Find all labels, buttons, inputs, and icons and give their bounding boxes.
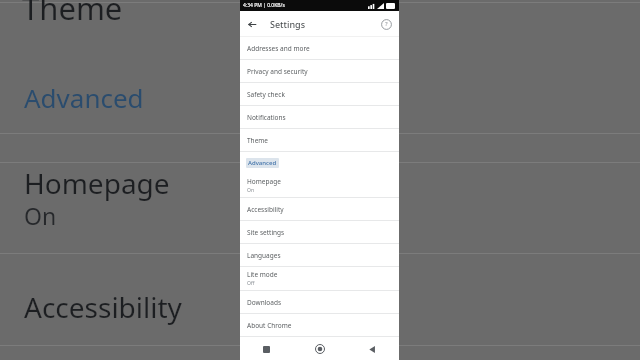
- button[interactable]: Help and feedback: [377, 15, 395, 33]
- staticText: Accessibility: [247, 205, 284, 214]
- button[interactable]: Back: [346, 338, 399, 360]
- button[interactable]: Home: [293, 338, 346, 360]
- staticText: Languages: [247, 251, 281, 260]
- staticText: Settings: [270, 18, 306, 30]
- staticText: About Chrome: [247, 321, 292, 330]
- staticText: Accessibility: [24, 288, 182, 326]
- staticText: Lite mode: [247, 270, 278, 279]
- staticText: Homepage: [24, 164, 170, 202]
- staticText: ?: [385, 20, 388, 28]
- staticText: Addresses and more: [247, 44, 310, 53]
- staticText: Downloads: [247, 298, 282, 307]
- staticText: Theme: [247, 136, 269, 145]
- button[interactable]: Languages: [240, 244, 399, 267]
- staticText: Advanced: [248, 159, 277, 167]
- button[interactable]: Lite mode: [240, 267, 399, 291]
- button[interactable]: Accessibility: [240, 198, 399, 221]
- staticText: Advanced: [24, 80, 144, 115]
- button[interactable]: Back: [243, 15, 261, 33]
- button[interactable]: Advanced: [240, 152, 399, 174]
- staticText: Off: [247, 280, 255, 287]
- staticText: 4:34 PM | 0.0KB/s: [243, 2, 285, 9]
- button[interactable]: Notifications: [240, 106, 399, 129]
- staticText: Theme: [22, 0, 123, 29]
- staticText: Homepage: [247, 177, 281, 186]
- staticText: Site settings: [247, 228, 285, 237]
- staticText: Notifications: [247, 113, 286, 122]
- staticText: Safety check: [247, 90, 285, 99]
- button[interactable]: About Chrome: [240, 314, 399, 337]
- button[interactable]: Downloads: [240, 291, 399, 314]
- button[interactable]: Site settings: [240, 221, 399, 244]
- button[interactable]: Safety check: [240, 83, 399, 106]
- button[interactable]: Privacy and security: [240, 60, 399, 83]
- button[interactable]: Addresses and more: [240, 37, 399, 60]
- staticText: Privacy and security: [247, 67, 308, 76]
- button[interactable]: Theme: [240, 129, 399, 152]
- staticText: On: [247, 187, 254, 194]
- button[interactable]: Homepage: [240, 174, 399, 198]
- button[interactable]: Recent apps: [240, 338, 293, 360]
- staticText: On: [24, 200, 57, 231]
